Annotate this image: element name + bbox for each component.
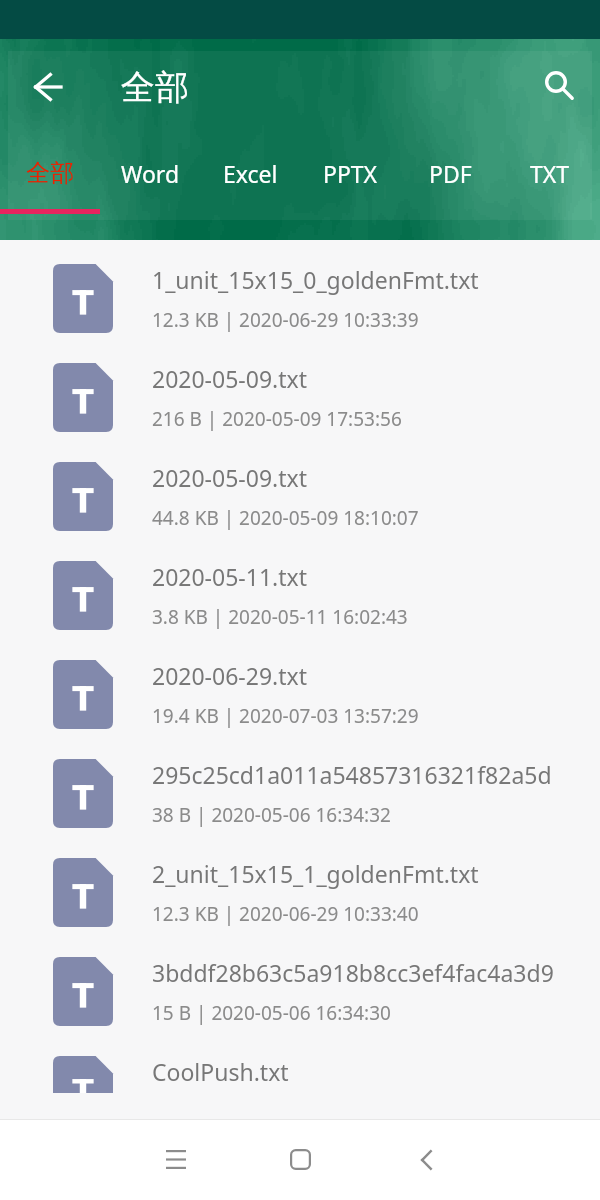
button[interactable]: Search	[521, 47, 597, 123]
staticText: 2_unit_15x15_1_goldenFmt.txt	[152, 858, 479, 889]
staticText: 3bddf28b63c5a918b8cc3ef4fac4a3d9	[152, 957, 554, 988]
button[interactable]: Word	[100, 141, 200, 205]
button[interactable]: 2020-06-29.txt	[0, 636, 600, 735]
button[interactable]: 295c25cd1a011a54857316321f82a5d	[0, 735, 600, 834]
staticText: 2020-06-29.txt	[152, 660, 307, 691]
button[interactable]: 2020-05-11.txt	[0, 537, 600, 636]
staticText: 12.3 KB | 2020-06-29 10:33:40	[152, 901, 419, 927]
staticText: 44.8 KB | 2020-05-09 18:10:07	[152, 505, 419, 531]
staticText: 216 B | 2020-05-09 17:53:56	[152, 406, 402, 432]
button[interactable]: PPTX	[300, 141, 400, 205]
staticText: 38 B | 2020-05-06 16:34:32	[152, 802, 391, 828]
button[interactable]: Home	[238, 1119, 362, 1200]
button[interactable]: 全部	[0, 141, 100, 205]
staticText: 全部	[121, 66, 189, 109]
staticText: Excel	[223, 158, 278, 189]
button[interactable]: Back	[9, 49, 85, 125]
staticText: Word	[121, 158, 180, 189]
button[interactable]: Back	[362, 1119, 486, 1200]
staticText: 19.4 KB | 2020-07-03 13:57:29	[152, 703, 419, 729]
button[interactable]: 3bddf28b63c5a918b8cc3ef4fac4a3d9	[0, 933, 600, 1032]
button[interactable]: TXT	[500, 141, 600, 205]
staticText: 295c25cd1a011a54857316321f82a5d	[152, 759, 552, 790]
staticText: 12.3 KB | 2020-06-29 10:33:39	[152, 307, 419, 333]
button[interactable]: 2_unit_15x15_1_goldenFmt.txt	[0, 834, 600, 933]
button[interactable]: 2020-05-09.txt	[0, 438, 600, 537]
button[interactable]: PDF	[400, 141, 500, 205]
staticText: 1_unit_15x15_0_goldenFmt.txt	[152, 264, 479, 295]
staticText: CoolPush.txt	[152, 1056, 289, 1087]
staticText: 2020-05-11.txt	[152, 561, 307, 592]
staticText: 全部	[26, 158, 74, 188]
button[interactable]: 1_unit_15x15_0_goldenFmt.txt	[0, 240, 600, 339]
button[interactable]: Recents	[114, 1119, 238, 1200]
staticText: PDF	[429, 158, 472, 189]
staticText: 15 B | 2020-05-06 16:34:30	[152, 1000, 391, 1026]
staticText: 2020-05-09.txt	[152, 363, 307, 394]
staticText: 2020-05-09.txt	[152, 462, 307, 493]
staticText: 3.8 KB | 2020-05-11 16:02:43	[152, 604, 408, 630]
staticText: TXT	[530, 158, 570, 189]
staticText: PPTX	[323, 158, 378, 189]
button[interactable]: Excel	[200, 141, 300, 205]
button[interactable]: 2020-05-09.txt	[0, 339, 600, 438]
button[interactable]: CoolPush.txt	[0, 1032, 600, 1093]
